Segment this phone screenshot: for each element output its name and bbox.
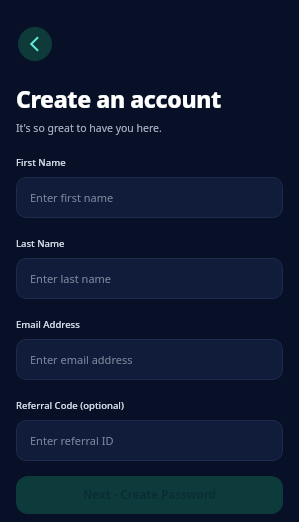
staticText: Email Address bbox=[16, 318, 80, 331]
button[interactable]: Enter referral ID bbox=[16, 420, 283, 461]
button[interactable]: Next - Create Password bbox=[16, 476, 283, 514]
staticText: Enter first name bbox=[30, 190, 114, 205]
staticText: Referral Code (optional) bbox=[16, 399, 124, 412]
staticText: Enter referral ID bbox=[30, 433, 114, 448]
button[interactable]: Enter first name bbox=[16, 177, 283, 218]
staticText: Last Name bbox=[16, 237, 65, 250]
staticText: First Name bbox=[16, 156, 66, 169]
staticText: It's so great to have you here. bbox=[16, 121, 162, 135]
staticText: Enter last name bbox=[30, 271, 112, 286]
staticText: Next - Create Password bbox=[83, 487, 216, 503]
staticText: Create an account bbox=[16, 83, 221, 114]
staticText: Enter email address bbox=[30, 352, 133, 367]
button[interactable]: Back bbox=[18, 27, 52, 61]
button[interactable]: Enter email address bbox=[16, 339, 283, 380]
button[interactable]: Enter last name bbox=[16, 258, 283, 299]
